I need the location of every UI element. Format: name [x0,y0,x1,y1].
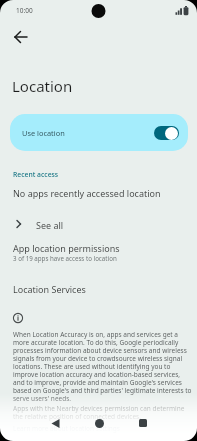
staticText: When Location Accuracy is on, apps and s… [13,330,192,403]
staticText: App location permissions [13,242,120,254]
staticText: 3 of 19 apps have access to location [13,254,117,262]
button[interactable]: App location permissions [0,240,197,266]
staticText: Location [12,76,73,96]
button[interactable] [47,415,63,431]
staticText: Apps with the Nearby devices permission … [13,404,185,421]
staticText: 10:00 [16,6,33,15]
button[interactable]: See all [0,213,197,235]
button[interactable] [135,415,151,431]
staticText: Recent access [13,170,59,179]
staticText: No apps recently accessed location [13,187,161,199]
staticText: Use location [22,128,65,138]
button[interactable]: Use location [10,114,188,151]
staticText: See all [36,219,64,231]
staticText: Learn more about location settings [13,424,120,433]
button[interactable]: Location Services [0,281,197,299]
button[interactable] [91,415,107,431]
button[interactable] [8,24,34,50]
button[interactable]: No apps recently accessed location [0,185,197,203]
staticText: Location Services [13,283,86,295]
